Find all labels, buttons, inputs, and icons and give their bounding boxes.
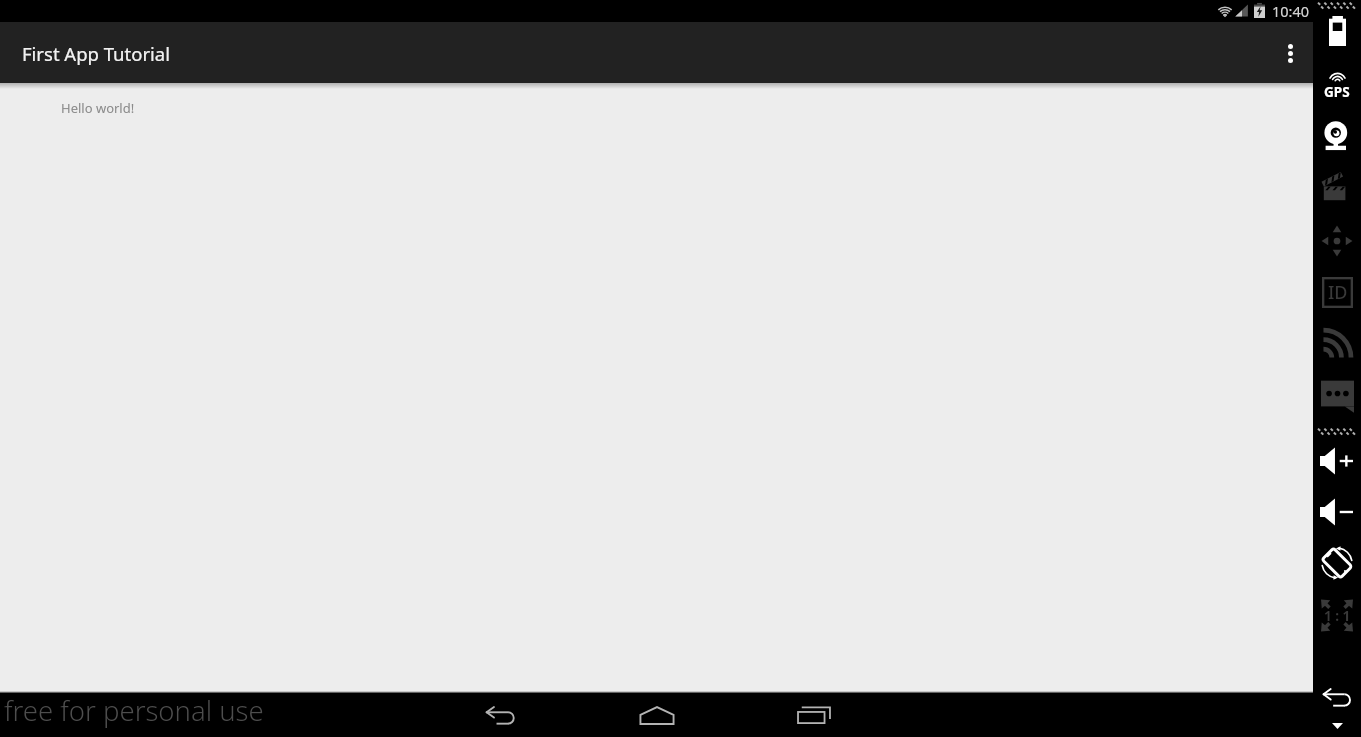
staticText: GPS [1324, 83, 1350, 101]
button[interactable]: Zoom to 1 to 1 [1313, 589, 1361, 641]
staticText: free for personal use [4, 692, 264, 729]
button[interactable]: Back [426, 693, 576, 737]
button[interactable]: More options [1268, 25, 1312, 81]
staticText: First App Tutorial [22, 41, 170, 66]
button[interactable]: Camera [1313, 109, 1361, 161]
staticText: 1 : 1 [1324, 607, 1351, 625]
button[interactable]: Messages [1313, 370, 1361, 422]
button[interactable]: Power [1313, 5, 1361, 57]
button[interactable]: GPS location [1313, 57, 1361, 109]
staticText: 10:40 [1272, 1, 1310, 21]
button[interactable]: Rotate [1313, 537, 1361, 589]
button[interactable]: Cellular [1313, 317, 1361, 369]
button[interactable]: Volume down [1313, 486, 1361, 538]
button[interactable]: Show more controls [1313, 723, 1361, 737]
button[interactable]: Record screen [1313, 161, 1361, 213]
staticText: ID [1328, 280, 1348, 305]
button[interactable]: D-pad [1313, 215, 1361, 267]
button[interactable]: Volume up [1313, 435, 1361, 487]
staticText: Hello world! [61, 99, 135, 117]
button[interactable]: Recent apps [739, 693, 889, 737]
button[interactable]: Home [582, 693, 732, 737]
button[interactable]: Device ID [1313, 266, 1361, 318]
button[interactable]: Back [1313, 671, 1361, 723]
